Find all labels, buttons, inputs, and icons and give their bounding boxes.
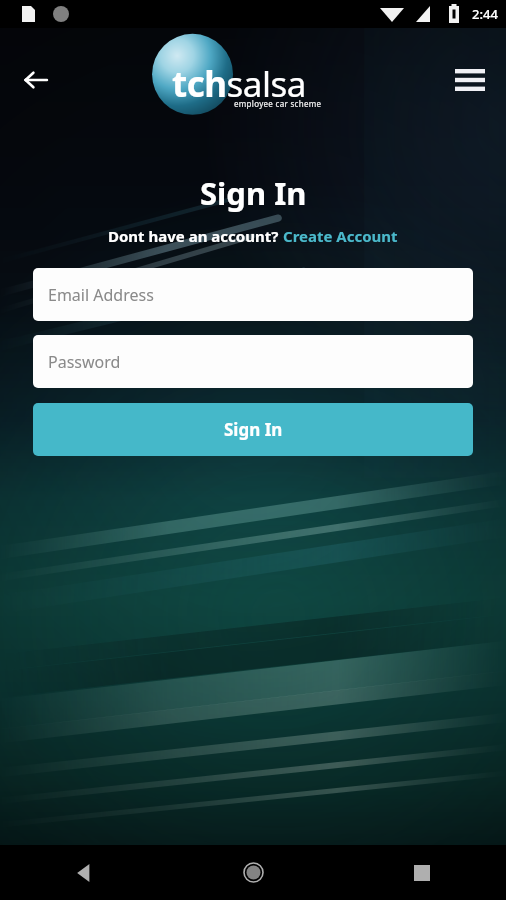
staticText: Password	[48, 351, 121, 373]
button[interactable]: Back	[0, 845, 168, 900]
button[interactable]: Back	[12, 56, 60, 104]
button[interactable]: Home	[169, 845, 337, 900]
button[interactable]: Recents	[338, 845, 506, 900]
staticText: Create Account	[283, 226, 398, 246]
staticText: 2:44	[472, 5, 498, 23]
button[interactable]: Dont have an account?	[108, 226, 398, 246]
button[interactable]: Email Address	[33, 268, 473, 321]
staticText: Dont have an account?	[108, 226, 283, 246]
staticText: Email Address	[48, 284, 154, 306]
button[interactable]: Menu	[446, 56, 494, 104]
button[interactable]: Password	[33, 335, 473, 388]
staticText: Sign In	[200, 172, 307, 214]
staticText: tchsalsa	[172, 60, 306, 108]
button[interactable]: Sign In	[33, 403, 473, 456]
staticText: employee car scheme	[234, 98, 322, 109]
staticText: Sign In	[224, 418, 283, 441]
